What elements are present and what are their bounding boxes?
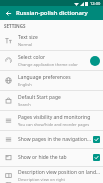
staticText: Language preferences	[18, 74, 71, 81]
staticText: Search	[18, 102, 31, 107]
staticText: SETTINGS	[4, 23, 26, 29]
button[interactable]: Show or hide the tab	[0, 149, 103, 166]
staticText: Show or hide the tab	[18, 154, 67, 161]
staticText: Normal	[18, 42, 33, 47]
button[interactable]: Show pages in the navigation menu	[0, 131, 103, 148]
button[interactable]: Toggle Show pages in the navigation menu	[93, 136, 100, 143]
button[interactable]: Theme color	[90, 56, 100, 66]
button[interactable]: Select color	[0, 51, 103, 70]
button[interactable]: Toggle Show or hide the tab	[93, 154, 100, 161]
staticText: 12:00	[90, 1, 101, 6]
staticText: Show pages in the navigation menu	[18, 136, 91, 143]
staticText: Change application theme color	[18, 62, 78, 67]
staticText: English	[18, 82, 32, 87]
button[interactable]: Language preferences	[0, 71, 103, 90]
button[interactable]: Description view position on landscape m…	[0, 167, 103, 183]
staticText: You can show/hide and reorder pages	[18, 122, 90, 127]
staticText: Select color	[18, 54, 45, 61]
staticText: Description view on right	[18, 177, 65, 182]
button[interactable]: Navigate up	[3, 8, 13, 18]
staticText: Pages visibility and monitoring	[18, 114, 91, 121]
button[interactable]: Text size	[0, 31, 103, 50]
button[interactable]: Default Start page	[0, 91, 103, 110]
staticText: Default Start page	[18, 94, 61, 101]
staticText: Description view position on landscape m…	[18, 169, 100, 176]
staticText: Russian-polish dictionary	[16, 9, 88, 17]
staticText: Text size	[18, 34, 38, 41]
button[interactable]: Pages visibility and monitoring	[0, 111, 103, 130]
